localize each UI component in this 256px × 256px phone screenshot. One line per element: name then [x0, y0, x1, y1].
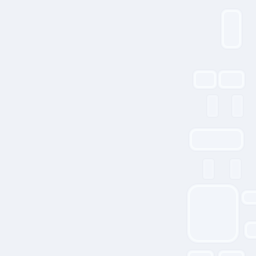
- button[interactable]: Trailing card 2: [243, 220, 256, 240]
- button[interactable]: Wide card: [188, 127, 245, 152]
- button[interactable]: Bottom card 2: [217, 249, 246, 256]
- button[interactable]: Tile 2: [217, 69, 246, 90]
- button[interactable]: Card 1: [220, 8, 243, 50]
- button[interactable]: Trailing card 1: [240, 189, 256, 206]
- button[interactable]: Bottom card 1: [186, 249, 215, 256]
- button[interactable]: Tile 1: [192, 69, 218, 90]
